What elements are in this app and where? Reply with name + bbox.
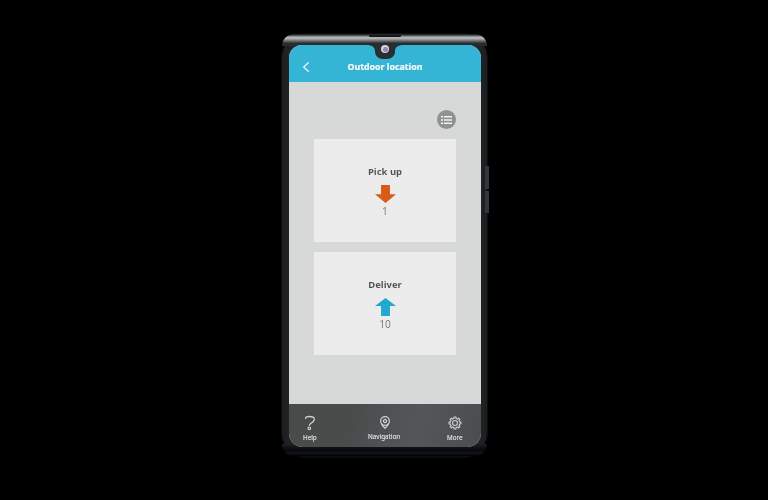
staticText: More <box>447 433 463 442</box>
button[interactable]: Deliver <box>314 252 456 355</box>
button[interactable]: More <box>429 410 481 447</box>
staticText: Deliver <box>314 278 456 291</box>
button[interactable]: List view <box>437 110 456 129</box>
staticText: Outdoor location <box>289 61 481 73</box>
staticText: 10 <box>314 317 456 331</box>
staticText: 1 <box>314 204 456 218</box>
staticText: Help <box>303 433 317 442</box>
button[interactable]: Back <box>296 54 316 74</box>
button[interactable]: Pick up <box>314 139 456 242</box>
staticText: Pick up <box>314 165 456 178</box>
button[interactable]: Navigation <box>358 410 410 447</box>
button[interactable]: Help <box>289 410 336 447</box>
staticText: Navigation <box>368 432 401 441</box>
